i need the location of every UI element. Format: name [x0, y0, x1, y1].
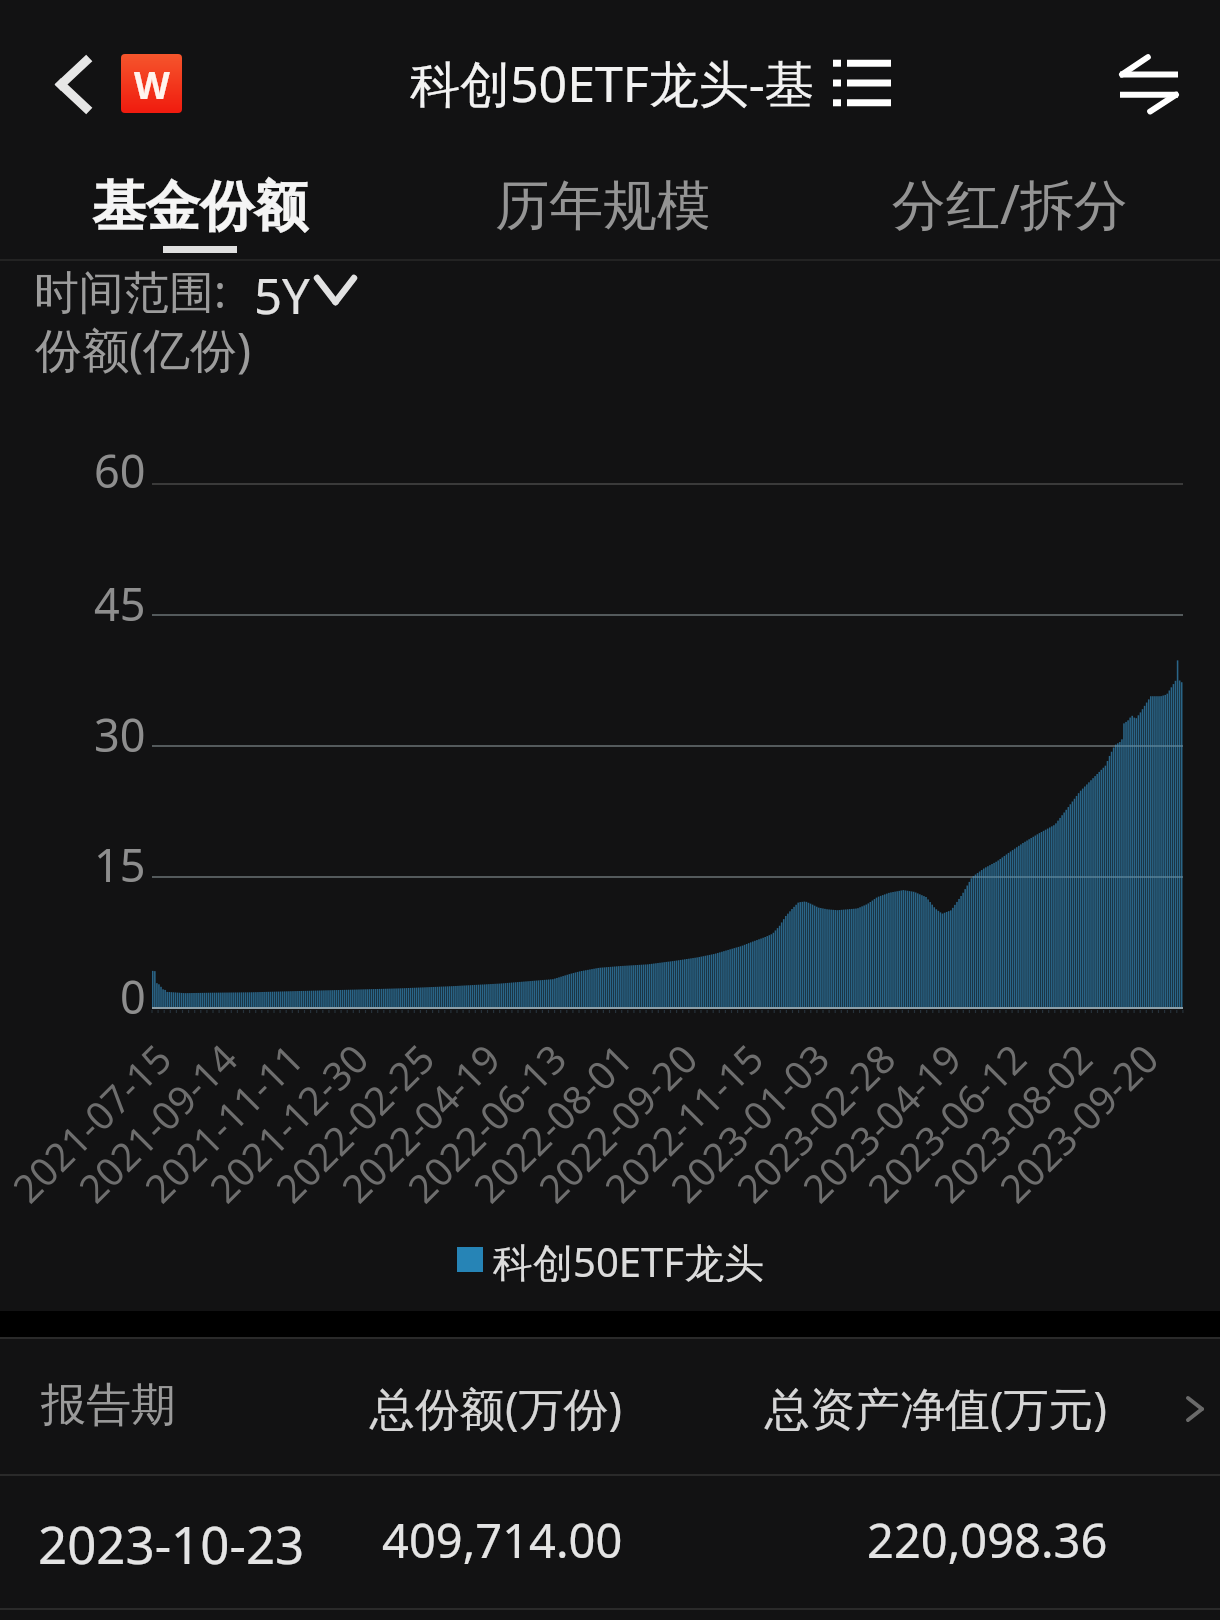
staticText: 2023-10-23 — [38, 1509, 305, 1578]
staticText: 2023-08-02 — [921, 1032, 1103, 1213]
button[interactable]: 基金份额 — [0, 144, 400, 258]
staticText: 2021-09-14 — [66, 1032, 248, 1213]
staticText: 220,098.36 — [867, 1508, 1108, 1572]
button[interactable]: Compare — [1096, 31, 1202, 137]
staticText: 409,714.00 — [382, 1508, 623, 1572]
staticText: 历年规模 — [495, 172, 711, 240]
staticText: 时间范围: — [34, 260, 227, 318]
button[interactable]: 2023-10-23 — [0, 1476, 1220, 1608]
staticText: 45 — [94, 573, 146, 634]
staticText: 2022-06-13 — [395, 1032, 577, 1213]
staticText: 2022-08-01 — [461, 1032, 643, 1213]
staticText: 科创50ETF龙头-基 — [410, 49, 815, 117]
staticText: 2023-09-20 — [987, 1032, 1169, 1213]
staticText: 基金份额 — [92, 173, 308, 241]
button[interactable]: 历年规模 — [400, 144, 805, 258]
staticText: 2021-12-30 — [197, 1032, 379, 1213]
staticText: 总份额(万份) — [370, 1377, 623, 1438]
staticText: 分红/拆分 — [892, 166, 1129, 240]
staticText: 30 — [94, 704, 146, 765]
button[interactable]: Back — [26, 42, 116, 126]
staticText: 2022-04-19 — [329, 1032, 511, 1213]
button[interactable]: Menu — [832, 58, 892, 108]
staticText: 60 — [94, 440, 146, 501]
button[interactable]: 时间范围: — [30, 262, 360, 320]
staticText: 2022-09-20 — [526, 1032, 708, 1213]
button[interactable]: 分红/拆分 — [805, 144, 1215, 258]
button[interactable]: 报告期 — [0, 1339, 1220, 1474]
staticText: 报告期 — [41, 1377, 176, 1434]
staticText: 科创50ETF龙头 — [493, 1234, 764, 1289]
staticText: 5Y — [254, 262, 310, 320]
staticText: 2023-06-12 — [855, 1032, 1037, 1213]
staticText: 2023-01-03 — [658, 1032, 840, 1213]
staticText: 2022-11-15 — [592, 1032, 774, 1213]
staticText: 份额(亿份) — [35, 317, 252, 381]
staticText: 2022-02-25 — [263, 1032, 445, 1213]
staticText: 2023-04-19 — [790, 1032, 972, 1213]
staticText: 2021-07-15 — [0, 1032, 182, 1213]
button[interactable]: More columns — [1158, 1365, 1220, 1455]
staticText: 总资产净值(万元) — [765, 1377, 1108, 1438]
staticText: 15 — [94, 834, 146, 895]
staticText: 0 — [120, 966, 146, 1027]
staticText: 2021-11-11 — [132, 1032, 314, 1213]
button[interactable]: Wind logo — [121, 54, 182, 113]
staticText: 2023-02-28 — [724, 1032, 906, 1213]
staticText: W — [134, 59, 170, 109]
